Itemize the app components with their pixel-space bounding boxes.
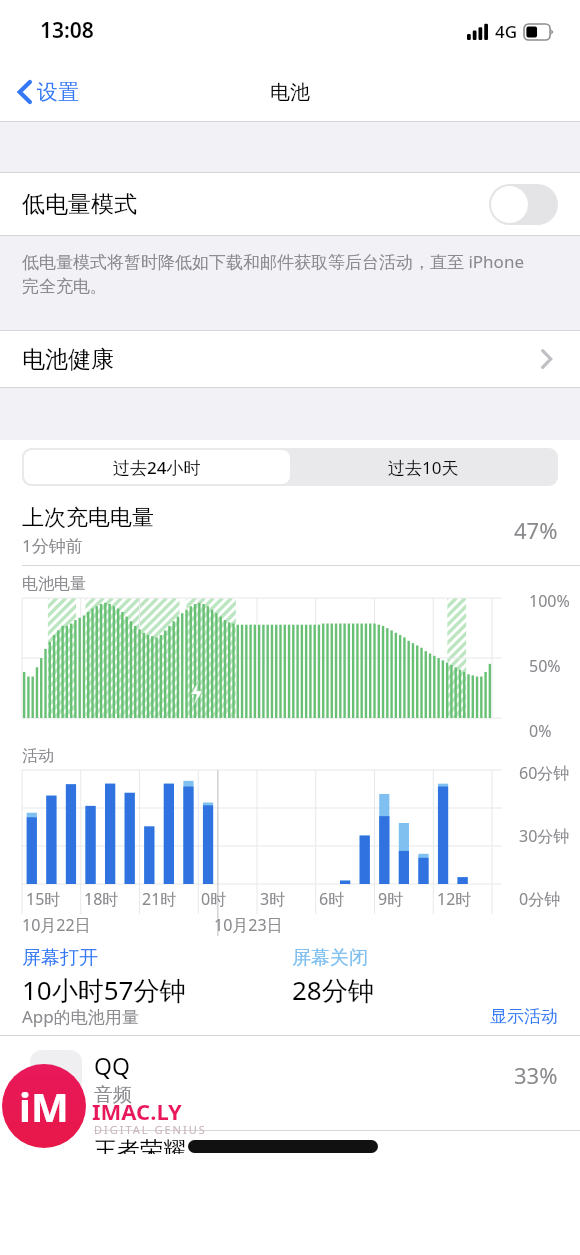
staticText: 47% — [514, 515, 558, 545]
staticText: 上次充电电量 — [22, 504, 154, 532]
staticText: 18时 — [84, 888, 119, 910]
staticText: 0时 — [201, 888, 227, 910]
staticText: 屏幕关闭 — [292, 946, 368, 970]
staticText: 过去10天 — [388, 456, 459, 479]
staticText: QQ — [94, 1050, 130, 1081]
staticText: 13:08 — [40, 16, 94, 45]
staticText: 电池电量 — [22, 574, 86, 594]
staticText: 28分钟 — [292, 972, 374, 1008]
button[interactable]: 过去10天 — [290, 450, 556, 484]
staticText: 9时 — [378, 888, 404, 910]
staticText: 0% — [529, 720, 552, 742]
staticText: 0分钟 — [519, 888, 561, 910]
staticText: 15时 — [26, 888, 61, 910]
staticText: DIGITAL GENIUS — [94, 1122, 207, 1137]
staticText: 10月23日 — [214, 914, 283, 936]
staticText: 屏幕打开 — [22, 946, 98, 970]
staticText: 4G — [495, 20, 518, 43]
staticText: 电池健康 — [22, 345, 114, 374]
staticText: 12时 — [437, 888, 472, 910]
staticText: 王者荣耀 — [94, 1136, 186, 1154]
staticText: 低电量模式 — [22, 190, 137, 219]
staticText: 显示活动 — [490, 1006, 558, 1027]
button[interactable]: QQ — [0, 1036, 580, 1154]
staticText: 1分钟前 — [22, 534, 83, 557]
button[interactable]: 设置 — [14, 75, 83, 109]
staticText: 3时 — [260, 888, 286, 910]
button[interactable]: 显示活动 — [490, 1006, 558, 1027]
staticText: 活动 — [22, 746, 54, 766]
staticText: 10小时57分钟 — [22, 972, 186, 1008]
staticText: 30分钟 — [519, 825, 570, 847]
staticText: 设置 — [37, 79, 79, 105]
staticText: 过去24小时 — [113, 456, 201, 479]
staticText: 33% — [514, 1060, 558, 1090]
staticText: 60分钟 — [519, 762, 570, 784]
button[interactable]: 低电量模式 — [0, 172, 580, 236]
staticText: 低电量模式将暂时降低如下载和邮件获取等后台活动，直至 iPhone完全充电。 — [22, 250, 540, 297]
staticText: 50% — [529, 655, 561, 677]
staticText: 21时 — [142, 888, 177, 910]
staticText: iM — [19, 1079, 69, 1133]
staticText: IMAC.LY — [92, 1096, 182, 1126]
staticText: 100% — [529, 590, 570, 612]
button[interactable]: Low Power Mode toggle — [489, 184, 558, 225]
button[interactable]: 电池健康 — [0, 330, 580, 388]
staticText: 10月22日 — [22, 914, 91, 936]
staticText: 6时 — [319, 888, 345, 910]
staticText: 电池 — [270, 80, 310, 105]
button[interactable]: 过去24小时 — [24, 450, 290, 484]
staticText: 音频 — [94, 1083, 132, 1107]
staticText: App的电池用量 — [22, 1005, 139, 1028]
